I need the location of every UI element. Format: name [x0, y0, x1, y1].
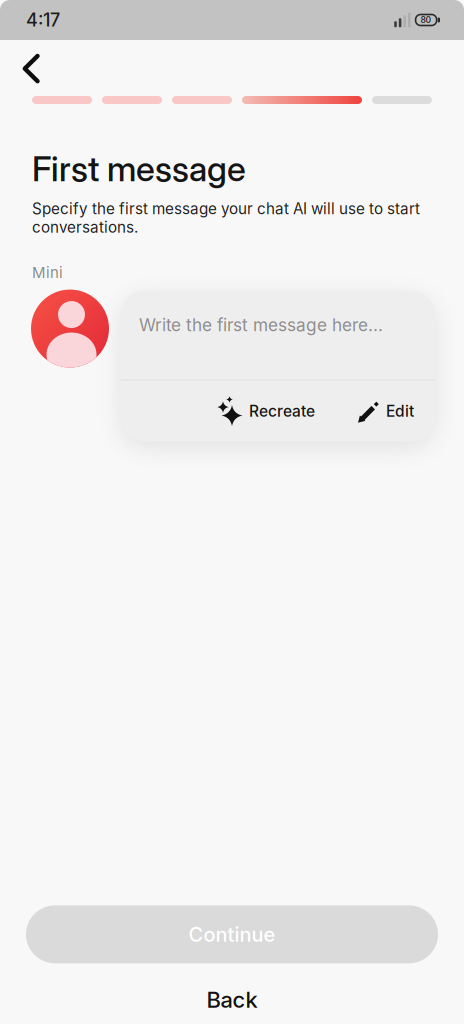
button[interactable]: Recreate: [217, 396, 315, 426]
button[interactable]: Back: [0, 54, 39, 83]
staticText: Back: [206, 986, 257, 1013]
button[interactable]: Edit: [315, 399, 414, 423]
staticText: Mini: [32, 263, 63, 281]
staticText: 80: [421, 15, 432, 25]
staticText: 4:17: [26, 9, 60, 31]
staticText: Write the first message here...: [139, 315, 383, 335]
staticText: Recreate: [249, 402, 315, 420]
staticText: First message: [32, 148, 246, 190]
staticText: Specify the first message your chat AI w…: [32, 200, 420, 236]
staticText: Continue: [188, 922, 275, 946]
button[interactable]: Back: [206, 963, 257, 1024]
staticText: Edit: [386, 402, 414, 420]
button[interactable]: Continue: [0, 905, 464, 963]
